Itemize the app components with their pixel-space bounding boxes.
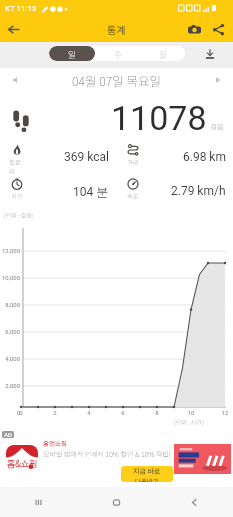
staticText: 8 — [150, 409, 164, 416]
button[interactable]: Share — [206, 17, 230, 41]
staticText: 홈&쇼핑 — [7, 457, 38, 470]
staticText: 0 — [0, 409, 20, 416]
button[interactable]: 일 — [49, 46, 95, 61]
staticText: 통계 — [107, 22, 126, 36]
button[interactable]: 월 — [140, 46, 185, 61]
staticText: 2,000 — [0, 382, 20, 389]
staticText: 04월 07일 목요일 — [72, 71, 162, 89]
button[interactable]: Home — [77, 487, 155, 517]
staticText: 모바일 앱에서 인세시 10% 할인 & 10% 적립! — [43, 449, 171, 459]
staticText: 4,000 — [0, 355, 20, 362]
staticText: 2 — [48, 409, 62, 416]
staticText: 속도 — [127, 191, 139, 200]
staticText: 걸음 — [210, 121, 224, 132]
staticText: 12,000 — [0, 247, 20, 254]
staticText: 369 kcal — [64, 150, 109, 164]
button[interactable]: AD — [0, 428, 233, 487]
button[interactable]: Next day — [209, 71, 227, 89]
button[interactable]: Recent apps — [0, 487, 77, 517]
staticText: 10 — [184, 409, 198, 416]
staticText: KT 11:13 — [5, 4, 37, 13]
staticText: 104 분 — [73, 184, 109, 199]
staticText: 11078 — [111, 98, 207, 138]
staticText: 6.98 km — [183, 150, 226, 164]
staticText: 거리 — [127, 157, 139, 166]
staticText: AD — [4, 431, 12, 438]
staticText: 홈앤쇼핑 — [43, 438, 67, 447]
staticText: 2.79 km/h — [171, 184, 226, 198]
staticText: 10,000 — [0, 274, 20, 281]
button[interactable]: Camera — [182, 17, 206, 41]
staticText: 4 — [82, 409, 96, 416]
staticText: (단위 : 걸음) — [4, 211, 34, 220]
staticText: 칼로리 — [9, 157, 25, 175]
staticText: 지금 바로 — [133, 466, 161, 476]
staticText: 8,000 — [0, 301, 20, 308]
button[interactable]: Back — [0, 16, 26, 42]
button[interactable]: 지금 바로 — [121, 466, 173, 482]
staticText: 0 — [14, 409, 28, 416]
staticText: 6,000 — [0, 328, 20, 335]
staticText: 시간 — [11, 191, 23, 200]
staticText: 월 — [159, 48, 167, 60]
staticText: 12 — [218, 409, 232, 416]
staticText: 6 — [116, 409, 130, 416]
staticText: (단위 : 시간) — [174, 418, 204, 427]
staticText: 주 — [114, 48, 122, 60]
button[interactable]: Previous day — [6, 71, 24, 89]
button[interactable]: 주 — [95, 46, 140, 61]
staticText: 다운받기 — [135, 476, 159, 482]
button[interactable]: Download — [200, 44, 220, 64]
button[interactable] — [174, 444, 231, 474]
button[interactable]: Back — [155, 487, 233, 517]
staticText: 일 — [68, 48, 76, 60]
